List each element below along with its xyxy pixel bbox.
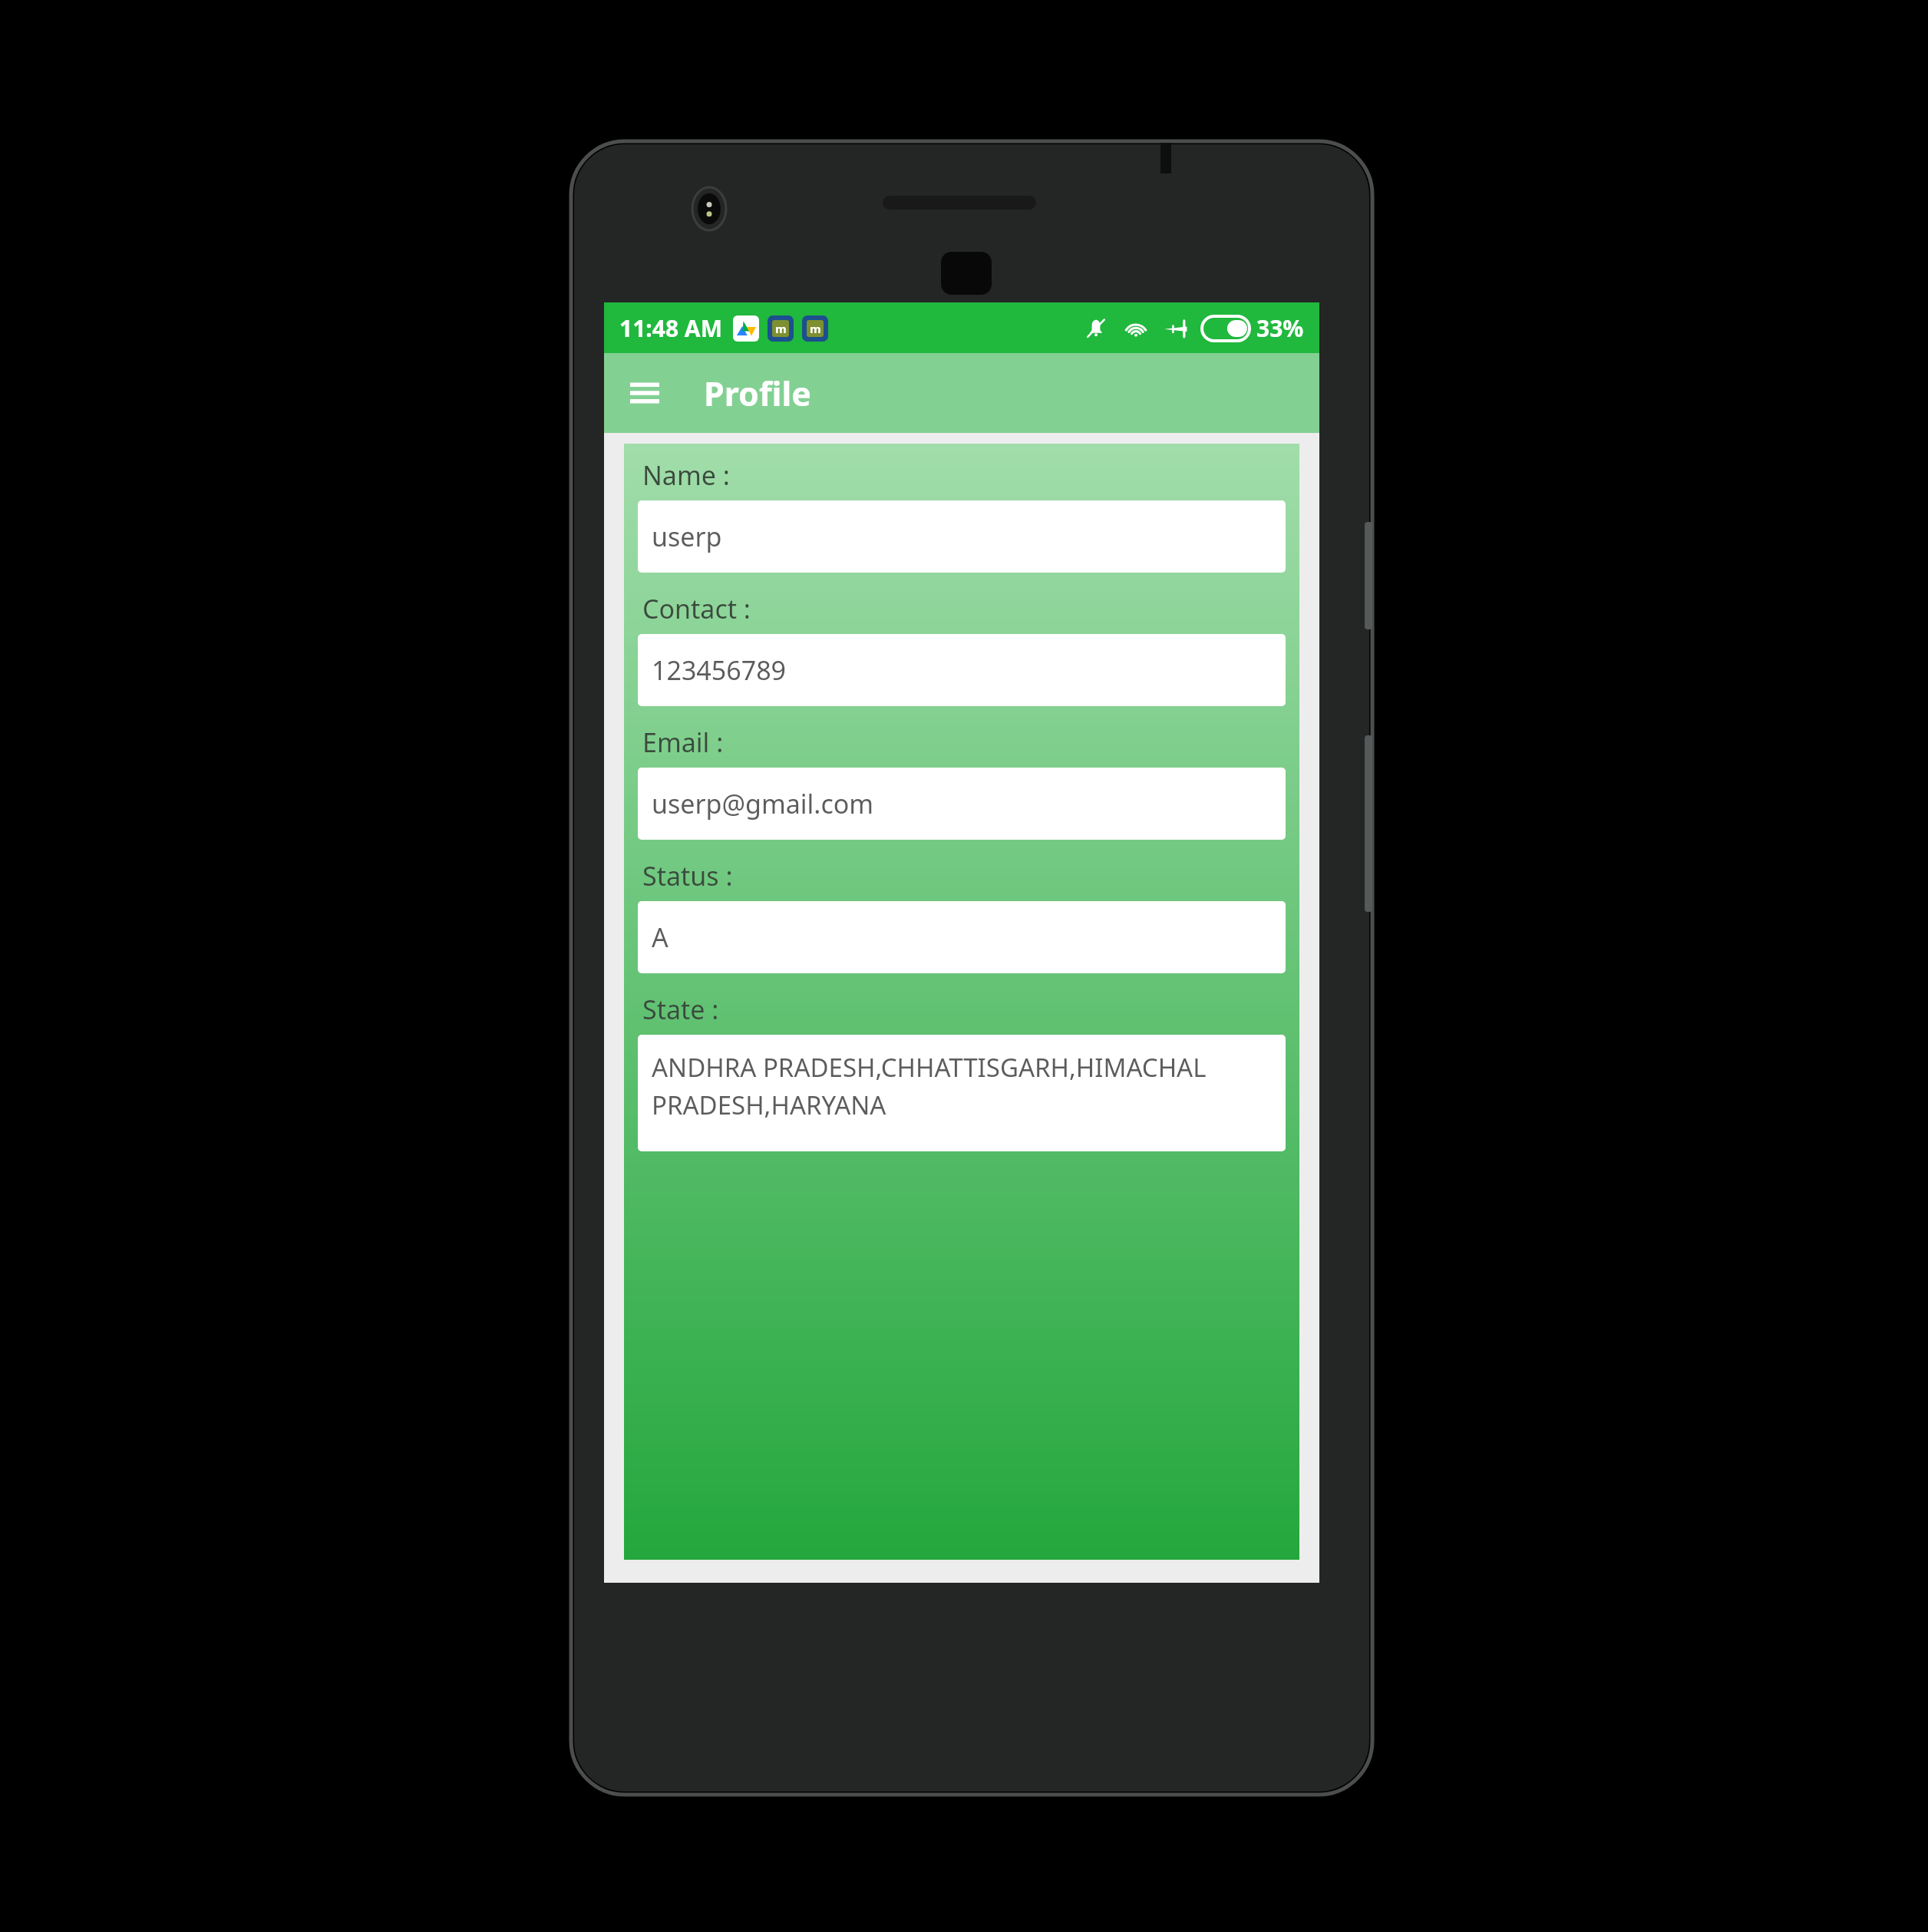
staticText: State : xyxy=(642,992,719,1027)
staticText: Name : xyxy=(642,457,730,493)
staticText: m xyxy=(775,321,787,336)
staticText: 11:48 AM xyxy=(619,312,722,344)
button[interactable]: ANDHRA PRADESH,CHHATTISGARH,HIMACHAL PRA… xyxy=(638,1035,1286,1151)
staticText: Email : xyxy=(642,725,724,760)
staticText: Contact : xyxy=(642,591,751,626)
staticText: 123456789 xyxy=(652,652,787,688)
staticText: Profile xyxy=(704,371,811,416)
staticText: m xyxy=(810,321,821,336)
button[interactable]: A xyxy=(638,901,1286,973)
staticText: A xyxy=(652,920,669,955)
button[interactable]: userp xyxy=(638,500,1286,573)
staticText: userp xyxy=(652,519,722,554)
staticText: userp@gmail.com xyxy=(652,786,874,821)
button[interactable]: 123456789 xyxy=(638,634,1286,706)
staticText: ANDHRA PRADESH,CHHATTISGARH,HIMACHAL PRA… xyxy=(652,1050,1272,1121)
staticText: Status : xyxy=(642,858,733,893)
button[interactable]: userp@gmail.com xyxy=(638,768,1286,840)
button[interactable]: Open navigation menu xyxy=(621,369,669,417)
staticText: 33% xyxy=(1256,312,1304,344)
